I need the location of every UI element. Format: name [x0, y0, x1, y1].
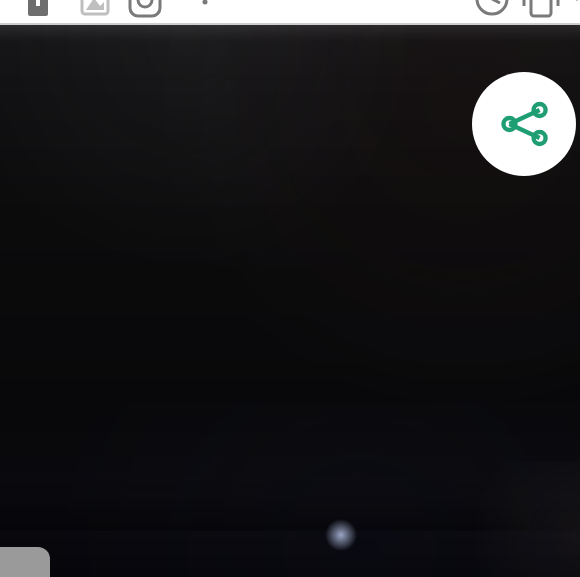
button[interactable]: Share	[472, 72, 576, 176]
button[interactable]: Recent photo	[0, 547, 50, 577]
